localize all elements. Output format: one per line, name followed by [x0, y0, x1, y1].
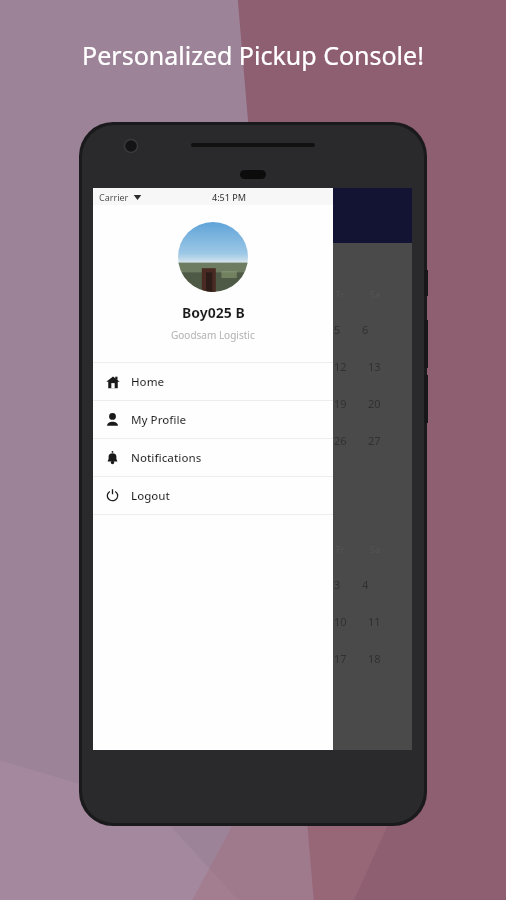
staticText: 20	[368, 396, 381, 411]
staticText: Notifications	[131, 450, 202, 466]
staticText: Carrier	[99, 191, 129, 203]
staticText: 4:51 PM	[212, 191, 246, 203]
staticText: Boy025 B	[182, 303, 245, 322]
staticText: 13	[368, 359, 381, 374]
staticText: 12	[334, 359, 347, 374]
staticText: 4	[362, 577, 369, 592]
staticText: Personalized Pickup Console!	[82, 38, 424, 72]
staticText: My Profile	[131, 412, 187, 428]
staticText: 11	[368, 614, 381, 629]
button[interactable]: My Profile	[93, 401, 333, 438]
staticText: Goodsam Logistic	[171, 328, 255, 342]
staticText: 27	[368, 433, 381, 448]
staticText: 6	[362, 322, 369, 337]
staticText: 17	[334, 651, 347, 666]
staticText: 18	[368, 651, 381, 666]
staticText: Logout	[131, 488, 170, 504]
button[interactable]: Logout	[93, 477, 333, 514]
staticText: 26	[334, 433, 347, 448]
button[interactable]: Home	[93, 363, 333, 400]
staticText: 5	[334, 322, 341, 337]
staticText: 19	[334, 396, 347, 411]
staticText: 3	[334, 577, 341, 592]
button[interactable]: Notifications	[93, 439, 333, 476]
staticText: 10	[334, 614, 347, 629]
staticText: Home	[131, 374, 165, 390]
